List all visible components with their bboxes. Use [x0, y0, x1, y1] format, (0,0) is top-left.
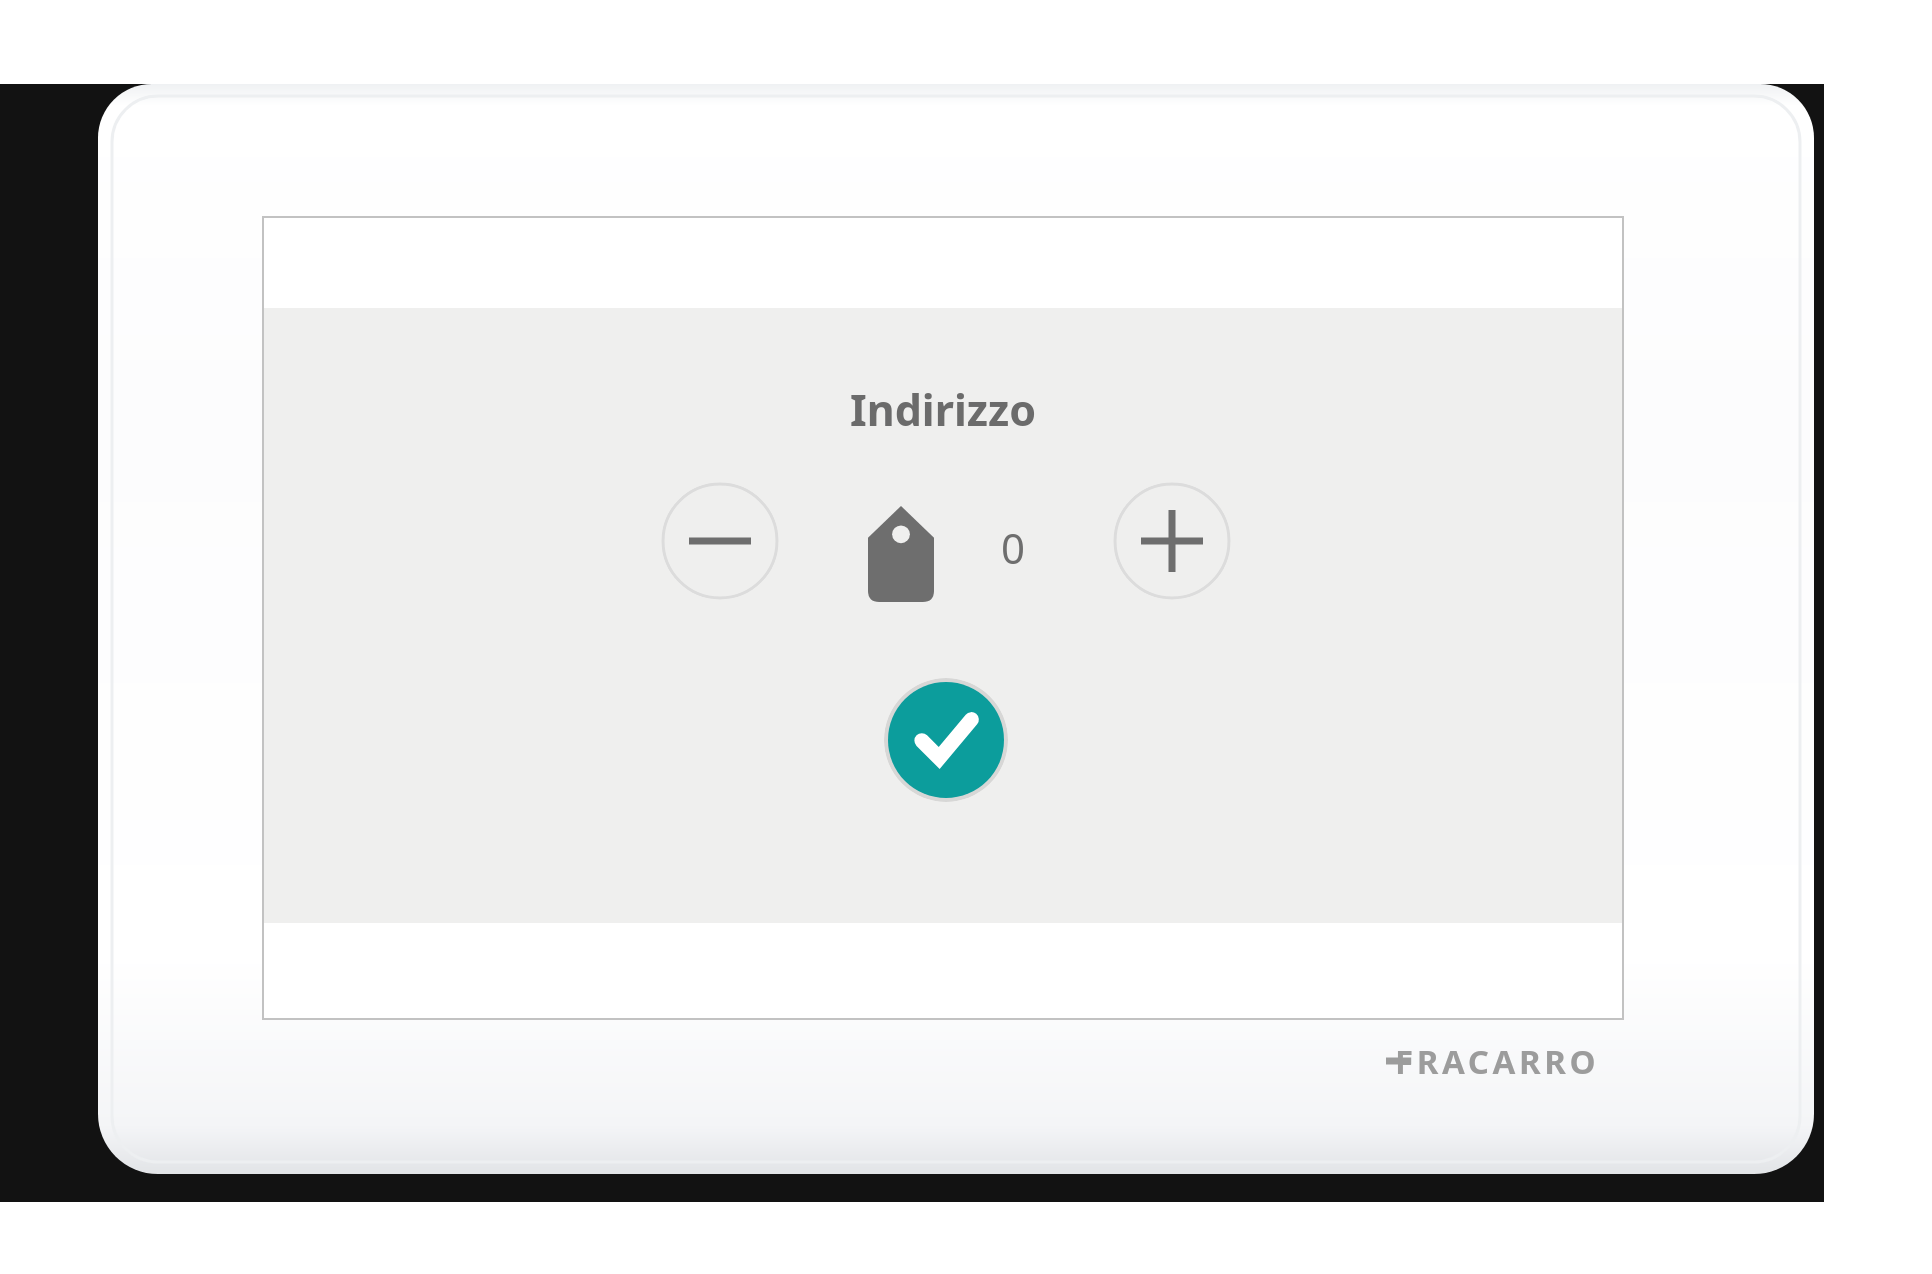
staticText: Indirizzo [264, 380, 1622, 439]
button[interactable]: Increase address [1113, 482, 1231, 600]
staticText: 0 [983, 519, 1043, 576]
button[interactable]: Confirm [884, 678, 1008, 802]
button[interactable]: Decrease address [661, 482, 779, 600]
staticText: FRACARRO [1395, 1039, 1600, 1084]
